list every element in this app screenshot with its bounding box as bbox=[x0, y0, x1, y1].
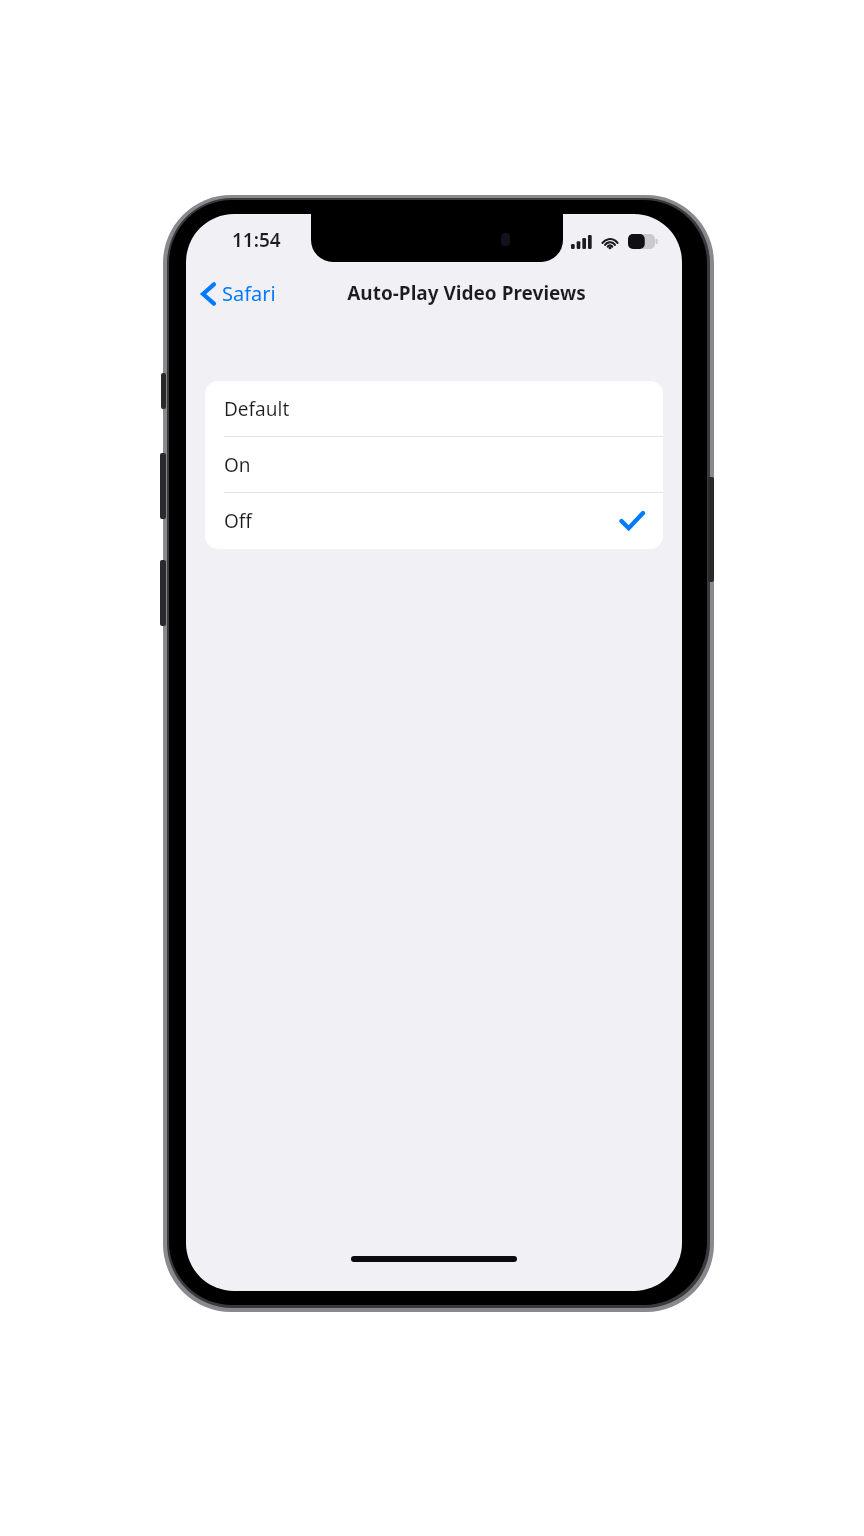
button[interactable]: Default bbox=[205, 381, 663, 437]
button[interactable]: On bbox=[205, 437, 663, 493]
staticText: On bbox=[224, 452, 251, 478]
other: Selected bbox=[620, 511, 644, 531]
button[interactable]: Safari bbox=[196, 274, 282, 313]
staticText: 11:54 bbox=[232, 227, 281, 253]
staticText: Safari bbox=[222, 280, 276, 307]
button[interactable]: Off bbox=[205, 493, 663, 549]
staticText: Default bbox=[224, 396, 290, 422]
staticText: Off bbox=[224, 508, 252, 534]
staticText: Auto-Play Video Previews bbox=[347, 280, 586, 306]
